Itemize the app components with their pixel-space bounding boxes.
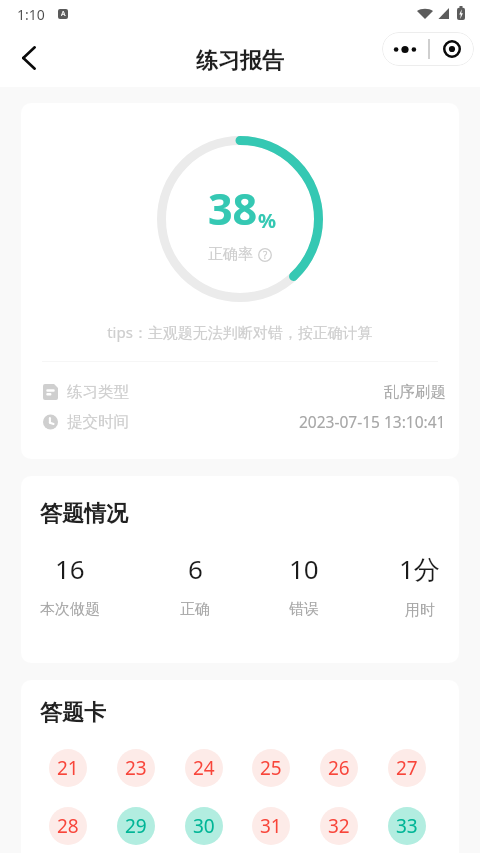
staticText: 28 (57, 813, 79, 839)
staticText: 用时 (405, 601, 435, 620)
button[interactable]: 24 (185, 749, 223, 787)
staticText: 答题卡 (40, 699, 106, 727)
button[interactable]: Close mini program (430, 32, 474, 66)
button[interactable]: 32 (320, 807, 358, 845)
staticText: 10 (289, 551, 319, 586)
staticText: ? (263, 248, 268, 262)
staticText: 练习类型 (67, 382, 129, 402)
button[interactable]: Back (5, 34, 53, 82)
button[interactable]: 28 (49, 807, 87, 845)
staticText: 24 (193, 755, 215, 781)
button[interactable]: 21 (49, 749, 87, 787)
staticText: 33 (396, 813, 418, 839)
staticText: 38 (208, 179, 258, 238)
staticText: 31 (260, 813, 282, 839)
button[interactable]: 26 (320, 749, 358, 787)
staticText: tips：主观题无法判断对错，按正确计算 (21, 322, 459, 342)
button[interactable]: More options (382, 32, 428, 66)
staticText: 30 (193, 813, 215, 839)
staticText: 27 (396, 755, 418, 781)
staticText: 16 (55, 551, 85, 586)
staticText: 练习报告 (196, 47, 284, 75)
staticText: 1:10 (17, 5, 45, 24)
button[interactable]: 33 (388, 807, 426, 845)
staticText: 25 (260, 755, 282, 781)
button[interactable]: 30 (185, 807, 223, 845)
staticText: 29 (125, 813, 147, 839)
staticText: 错误 (289, 600, 319, 619)
staticText: 21 (57, 755, 79, 781)
staticText: 32 (328, 813, 350, 839)
button[interactable]: 29 (117, 807, 155, 845)
staticText: 23 (125, 755, 147, 781)
staticText: 正确 (180, 600, 210, 619)
staticText: 正确率 (208, 245, 253, 264)
staticText: 提交时间 (67, 412, 129, 432)
staticText: 26 (328, 755, 350, 781)
staticText: 本次做题 (40, 600, 100, 619)
staticText: 乱序刷题 (384, 382, 446, 402)
staticText: A (61, 9, 66, 19)
button[interactable]: 31 (252, 807, 290, 845)
staticText: 1分 (399, 551, 440, 587)
button[interactable]: 23 (117, 749, 155, 787)
staticText: 答题情况 (40, 500, 128, 528)
staticText: 2023-07-15 13:10:41 (299, 411, 446, 432)
button[interactable]: 25 (252, 749, 290, 787)
staticText: % (258, 207, 277, 234)
button[interactable]: 27 (388, 749, 426, 787)
staticText: 6 (188, 551, 203, 586)
